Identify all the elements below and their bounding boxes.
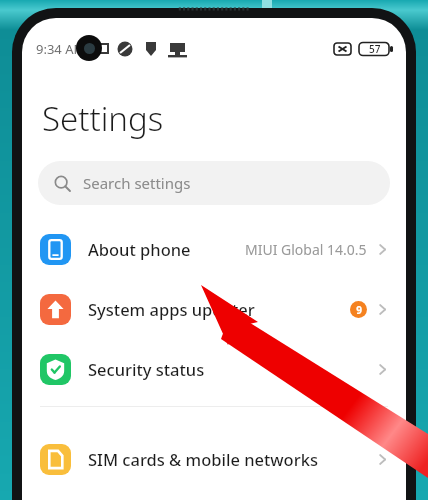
staticText: 9:34 AM bbox=[36, 40, 86, 58]
staticText: 9 bbox=[356, 303, 362, 317]
other: Annotation arrow pointing to About phone bbox=[0, 0, 428, 500]
button[interactable]: System apps updater bbox=[22, 279, 406, 339]
staticText: Search settings bbox=[83, 173, 191, 193]
staticText: MIUI Global 14.0.5 bbox=[245, 240, 367, 259]
staticText: About phone bbox=[88, 238, 191, 260]
button[interactable]: About phone bbox=[22, 219, 406, 279]
button[interactable]: Search settings bbox=[38, 161, 390, 205]
staticText: 57 bbox=[369, 42, 381, 56]
staticText: System apps updater bbox=[88, 298, 255, 320]
button[interactable]: SIM cards & mobile networks bbox=[22, 429, 406, 489]
staticText: Settings bbox=[42, 96, 164, 141]
staticText: Security status bbox=[88, 358, 205, 380]
staticText: SIM cards & mobile networks bbox=[88, 448, 318, 470]
button[interactable]: Security status bbox=[22, 339, 406, 399]
